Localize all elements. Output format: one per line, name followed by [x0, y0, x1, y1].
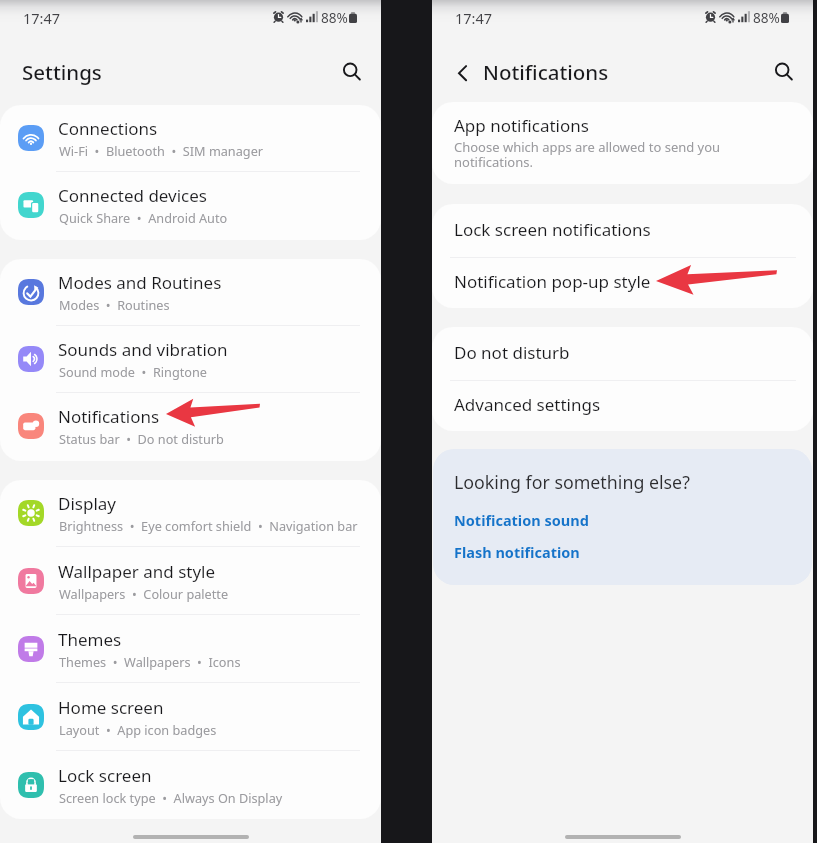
button[interactable]: Themes — [0, 616, 381, 684]
staticText: Wallpapers • Colour palette — [59, 585, 229, 602]
staticText: Connected devices — [58, 184, 208, 207]
staticText: Status bar • Do not disturb — [59, 430, 224, 447]
staticText: Settings — [22, 58, 102, 86]
staticText: Layout • App icon badges — [59, 721, 217, 738]
staticText: Home screen — [58, 696, 164, 719]
button[interactable]: Advanced settings — [432, 379, 813, 431]
button[interactable]: Lock screen notifications — [432, 204, 813, 256]
staticText: Lock screen — [58, 764, 152, 787]
staticText: 88% — [753, 8, 780, 27]
button[interactable]: Lock screen — [0, 752, 381, 814]
staticText: Modes and Routines — [58, 271, 222, 294]
staticText: Wallpaper and style — [58, 560, 216, 583]
staticText: Wi-Fi • Bluetooth • SIM manager — [59, 142, 264, 159]
staticText: Connections — [58, 117, 158, 140]
staticText: 88% — [321, 8, 348, 27]
button[interactable]: Search — [337, 59, 367, 89]
button[interactable]: App notifications — [432, 102, 813, 184]
button[interactable]: Notification sound — [454, 510, 589, 530]
staticText: Notification pop-up style — [454, 270, 651, 293]
staticText: Sound mode • Ringtone — [59, 363, 207, 380]
staticText: Modes • Routines — [59, 296, 170, 313]
staticText: Quick Share • Android Auto — [59, 209, 228, 226]
staticText: Screen lock type • Always On Display — [59, 789, 283, 806]
staticText: Choose which apps are allowed to send yo… — [454, 138, 721, 171]
staticText: Themes — [58, 628, 122, 651]
staticText: Sounds and vibration — [58, 338, 228, 361]
staticText: Brightness • Eye comfort shield • Naviga… — [59, 517, 358, 534]
staticText: Themes • Wallpapers • Icons — [59, 653, 241, 670]
staticText: 17:47 — [455, 8, 493, 28]
button[interactable]: Search — [769, 59, 799, 89]
staticText: Looking for something else? — [454, 470, 690, 494]
button[interactable]: Back — [448, 57, 480, 89]
staticText: Display — [58, 492, 116, 515]
staticText: 17:47 — [23, 8, 61, 28]
button[interactable]: Notifications — [0, 393, 381, 455]
button[interactable]: Connected devices — [0, 172, 381, 234]
staticText: Advanced settings — [454, 393, 601, 416]
button[interactable]: Display — [0, 480, 381, 548]
button[interactable]: Modes and Routines — [0, 259, 381, 327]
button[interactable]: Home screen — [0, 684, 381, 752]
button[interactable]: Do not disturb — [432, 327, 813, 379]
button[interactable]: Connections — [0, 105, 381, 173]
staticText: Notifications — [58, 405, 160, 428]
button[interactable]: Wallpaper and style — [0, 548, 381, 616]
button[interactable]: Flash notification — [454, 542, 580, 562]
staticText: Notifications — [483, 58, 609, 86]
staticText: Do not disturb — [454, 341, 570, 364]
button[interactable]: Sounds and vibration — [0, 326, 381, 394]
staticText: Lock screen notifications — [454, 218, 651, 241]
button[interactable]: Notification pop-up style — [432, 256, 813, 308]
staticText: App notifications — [454, 114, 589, 137]
